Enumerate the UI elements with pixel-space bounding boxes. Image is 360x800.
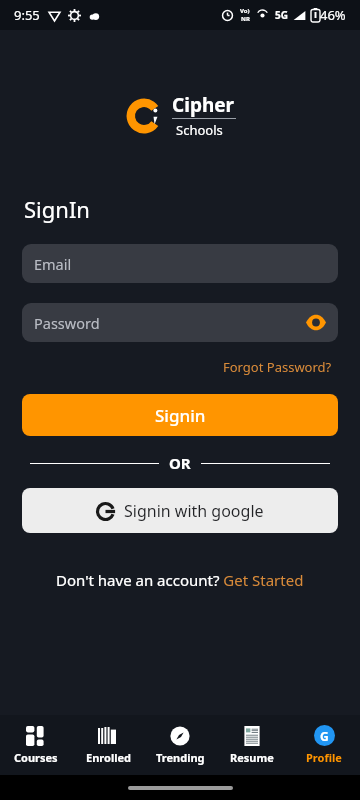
button[interactable]: G — [288, 715, 360, 775]
button[interactable]: Courses — [0, 715, 72, 775]
button[interactable]: Password — [22, 303, 338, 342]
staticText: Signin — [155, 404, 206, 427]
staticText: Vo) — [240, 7, 250, 15]
button[interactable]: Signin with google — [22, 488, 338, 533]
staticText: Schools — [176, 121, 223, 139]
staticText: Password — [34, 313, 100, 333]
staticText: Courses — [14, 750, 58, 765]
staticText: Signin with google — [124, 500, 264, 522]
button[interactable]: Trending — [144, 715, 216, 775]
staticText: Email — [34, 254, 72, 274]
button[interactable]: Forgot Password? — [219, 354, 336, 380]
staticText: Profile — [306, 750, 342, 765]
button[interactable]: Enrolled — [72, 715, 144, 775]
staticText: 46% — [320, 6, 346, 24]
staticText: NR — [241, 15, 250, 23]
staticText: Don't have an account? Get Started — [56, 570, 304, 590]
staticText: 5G — [275, 8, 288, 22]
staticText: 9:55 — [14, 6, 40, 24]
staticText: Resume — [230, 750, 274, 765]
button[interactable]: Signin — [22, 394, 338, 436]
staticText: G — [320, 728, 329, 744]
button[interactable]: Resume — [216, 715, 288, 775]
staticText: SignIn — [24, 194, 90, 224]
staticText: Enrolled — [86, 750, 131, 765]
button[interactable]: Don't have an account? Get Started — [52, 566, 308, 594]
staticText: Cipher — [172, 92, 235, 118]
staticText: Forgot Password? — [223, 358, 332, 376]
other: Show password — [306, 316, 326, 329]
button[interactable]: Email — [22, 244, 338, 283]
staticText: Trending — [156, 750, 205, 765]
staticText: OR — [169, 453, 191, 473]
